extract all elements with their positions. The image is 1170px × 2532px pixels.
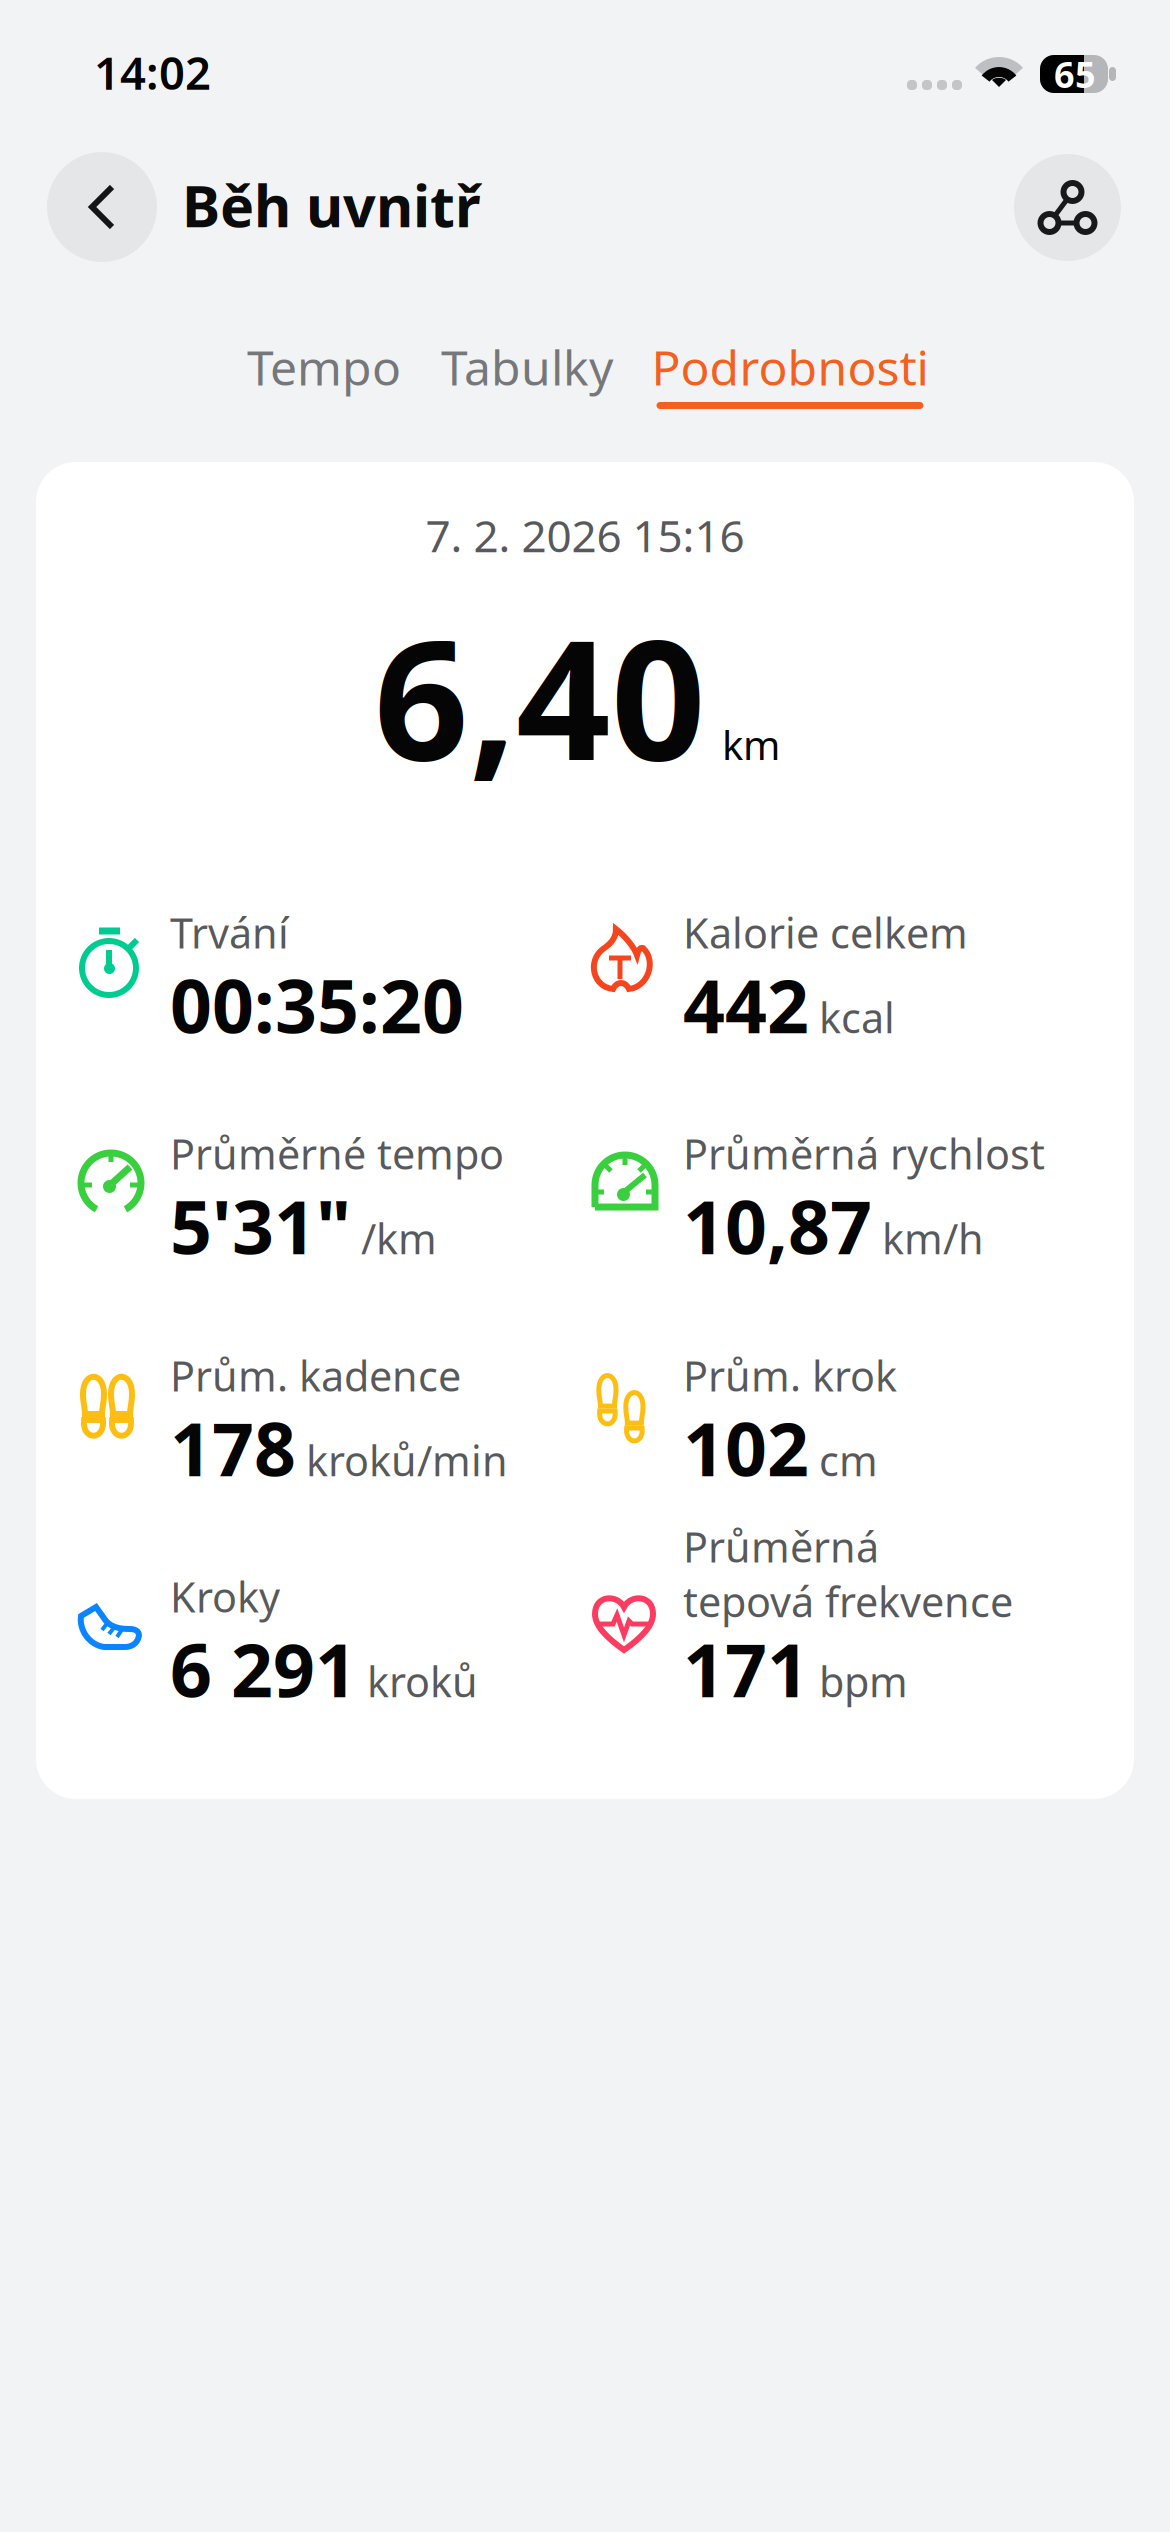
staticText: Běh uvnitř [182,167,481,243]
staticText: 14:02 [94,42,211,102]
staticText: 6,40 [374,586,706,806]
staticText: kroků/min [306,1433,508,1488]
staticText: km [722,718,780,771]
staticText: 5'31" [170,1177,351,1274]
staticText: kroků [367,1654,478,1709]
staticText: Průměrná rychlost [683,1126,1045,1181]
staticText: 442 [683,956,809,1053]
staticText: 6 291 [170,1620,357,1717]
staticText: Kalorie celkem [683,905,968,960]
button[interactable]: Tempo [244,332,404,402]
staticText: bpm [819,1654,908,1709]
staticText: Prům. kadence [170,1348,461,1403]
staticText: km/h [882,1211,984,1266]
button[interactable]: Back [47,152,157,262]
staticText: Průměrné tempo [170,1126,504,1181]
button[interactable]: Share [1014,154,1121,261]
staticText: Prům. krok [683,1348,897,1403]
staticText: 00:35:20 [170,956,464,1053]
staticText: Podrobnosti [651,335,928,399]
staticText: 102 [683,1399,809,1496]
button[interactable]: Podrobnosti [650,332,930,409]
staticText: cm [819,1433,878,1488]
staticText: 65 [1054,50,1096,98]
staticText: Trvání [170,905,289,960]
staticText: Tempo [247,335,401,399]
staticText: 10,87 [683,1177,872,1274]
staticText: kcal [819,990,895,1045]
staticText: Průměrná tepová frekvence [683,1519,1013,1629]
staticText: Kroky [170,1569,280,1624]
staticText: 178 [170,1399,296,1496]
staticText: /km [361,1211,437,1266]
staticText: 171 [683,1620,809,1717]
staticText: Tabulky [441,335,613,399]
button[interactable]: Tabulky [437,332,617,402]
staticText: 7. 2. 2026 15:16 [425,506,744,564]
